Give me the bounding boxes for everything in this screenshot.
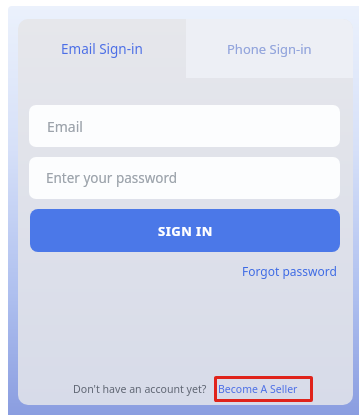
staticText: Don't have an account yet?: [73, 382, 207, 396]
staticText: Email Sign-in: [61, 40, 143, 58]
button[interactable]: Email Sign-in: [18, 19, 186, 78]
button[interactable]: Forgot password: [242, 263, 337, 279]
staticText: Email: [47, 117, 83, 136]
button[interactable]: Become A Seller: [218, 382, 298, 396]
staticText: Phone Sign-in: [227, 40, 312, 58]
button[interactable]: Phone Sign-in: [186, 19, 353, 78]
button[interactable]: SIGN IN: [30, 209, 340, 252]
button[interactable]: Enter your password: [29, 157, 340, 199]
button[interactable]: Email: [29, 105, 340, 147]
staticText: Enter your password: [46, 169, 178, 187]
staticText: SIGN IN: [158, 222, 213, 240]
